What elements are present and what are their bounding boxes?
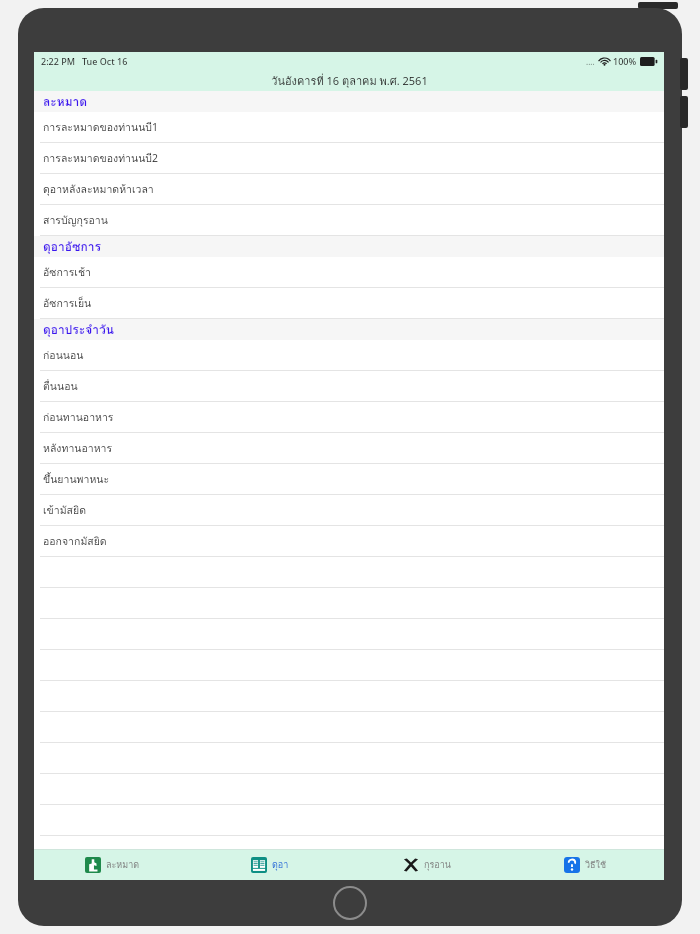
- staticText: 100%: [613, 55, 637, 67]
- button[interactable]: การละหมาดของท่านนบี2: [34, 143, 664, 174]
- staticText: การละหมาดของท่านนบี1: [43, 119, 158, 136]
- button[interactable]: อัซการเย็น: [34, 288, 664, 319]
- button[interactable]: ก่อนนอน: [34, 340, 664, 371]
- staticText: หลังทานอาหาร: [43, 440, 113, 457]
- button[interactable]: ตื่นนอน: [34, 371, 664, 402]
- button[interactable]: กุรอาน: [348, 850, 506, 880]
- staticText: วันอังคารที่ 16 ตุลาคม พ.ศ. 2561: [271, 72, 428, 89]
- button[interactable]: ดุอาอัซการ: [34, 236, 664, 257]
- button[interactable]: ก่อนทานอาหาร: [34, 402, 664, 433]
- staticText: ก่อนนอน: [43, 347, 84, 364]
- staticText: ดุอาหลังละหมาดห้าเวลา: [43, 181, 154, 198]
- button[interactable]: เข้ามัสยิด: [34, 495, 664, 526]
- staticText: อัซการเช้า: [43, 264, 91, 281]
- staticText: ก่อนทานอาหาร: [43, 409, 114, 426]
- button[interactable]: ขึ้นยานพาหนะ: [34, 464, 664, 495]
- staticText: อัซการเย็น: [43, 295, 92, 312]
- staticText: ละหมาด: [106, 858, 140, 872]
- staticText: สารบัญกุรอาน: [43, 212, 108, 229]
- staticText: ขึ้นยานพาหนะ: [43, 471, 110, 488]
- button[interactable]: ละหมาด: [34, 850, 191, 880]
- staticText: ละหมาด: [43, 92, 88, 111]
- button[interactable]: อัซการเช้า: [34, 257, 664, 288]
- staticText: ดุอาอัซการ: [43, 237, 101, 256]
- staticText: ออกจากมัสยิด: [43, 533, 107, 550]
- staticText: การละหมาดของท่านนบี2: [43, 150, 158, 167]
- staticText: ....: [586, 56, 595, 67]
- button[interactable]: ดุอาหลังละหมาดห้าเวลา: [34, 174, 664, 205]
- button[interactable]: สารบัญกุรอาน: [34, 205, 664, 236]
- staticText: ดุอาประจำวัน: [43, 320, 114, 339]
- button[interactable]: วิธีใช้: [506, 850, 664, 880]
- button[interactable]: ดุอา: [191, 850, 348, 880]
- button[interactable]: ดุอาประจำวัน: [34, 319, 664, 340]
- button[interactable]: หลังทานอาหาร: [34, 433, 664, 464]
- staticText: 2:22 PM Tue Oct 16: [41, 55, 128, 67]
- button[interactable]: ออกจากมัสยิด: [34, 526, 664, 557]
- staticText: กุรอาน: [424, 858, 451, 872]
- staticText: ตื่นนอน: [43, 378, 78, 395]
- staticText: เข้ามัสยิด: [43, 502, 86, 519]
- staticText: ดุอา: [272, 858, 289, 872]
- button[interactable]: การละหมาดของท่านนบี1: [34, 112, 664, 143]
- staticText: วิธีใช้: [585, 858, 607, 872]
- button[interactable]: ละหมาด: [34, 91, 664, 112]
